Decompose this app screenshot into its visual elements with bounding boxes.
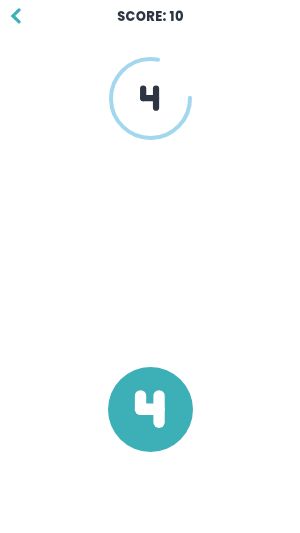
button[interactable]: Back <box>0 0 32 32</box>
staticText: SCORE: 10 <box>117 7 184 25</box>
button[interactable]: Answer 4 <box>108 367 193 452</box>
